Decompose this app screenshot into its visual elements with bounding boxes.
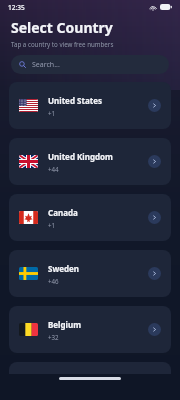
staticText: Canada <box>48 207 78 218</box>
staticText: +46 <box>48 277 59 285</box>
button[interactable]: Sweden <box>9 250 171 297</box>
button[interactable]: View Sweden numbers <box>148 267 161 280</box>
staticText: +1 <box>48 109 56 117</box>
staticText: United Kingdom <box>48 151 113 162</box>
button[interactable]: View Belgium numbers <box>148 323 161 336</box>
staticText: Search... <box>32 60 60 70</box>
button[interactable]: Canada <box>9 194 171 241</box>
button[interactable]: View United Kingdom numbers <box>148 155 161 168</box>
staticText: Tap a country to view free numbers <box>11 40 114 48</box>
staticText: Select Country <box>11 18 113 37</box>
staticText: United States <box>48 95 102 106</box>
button[interactable]: United States <box>9 82 171 129</box>
button[interactable]: Search... <box>11 55 169 74</box>
staticText: +1 <box>48 221 56 229</box>
staticText: 12:35 <box>8 3 25 12</box>
staticText: Belgium <box>48 319 81 330</box>
staticText: Sweden <box>48 263 80 274</box>
button[interactable]: United Kingdom <box>9 138 171 185</box>
button[interactable]: Belgium <box>9 306 171 353</box>
staticText: +32 <box>48 333 59 341</box>
staticText: +44 <box>48 165 59 173</box>
button[interactable]: View United States numbers <box>148 99 161 112</box>
button[interactable]: View Canada numbers <box>148 211 161 224</box>
